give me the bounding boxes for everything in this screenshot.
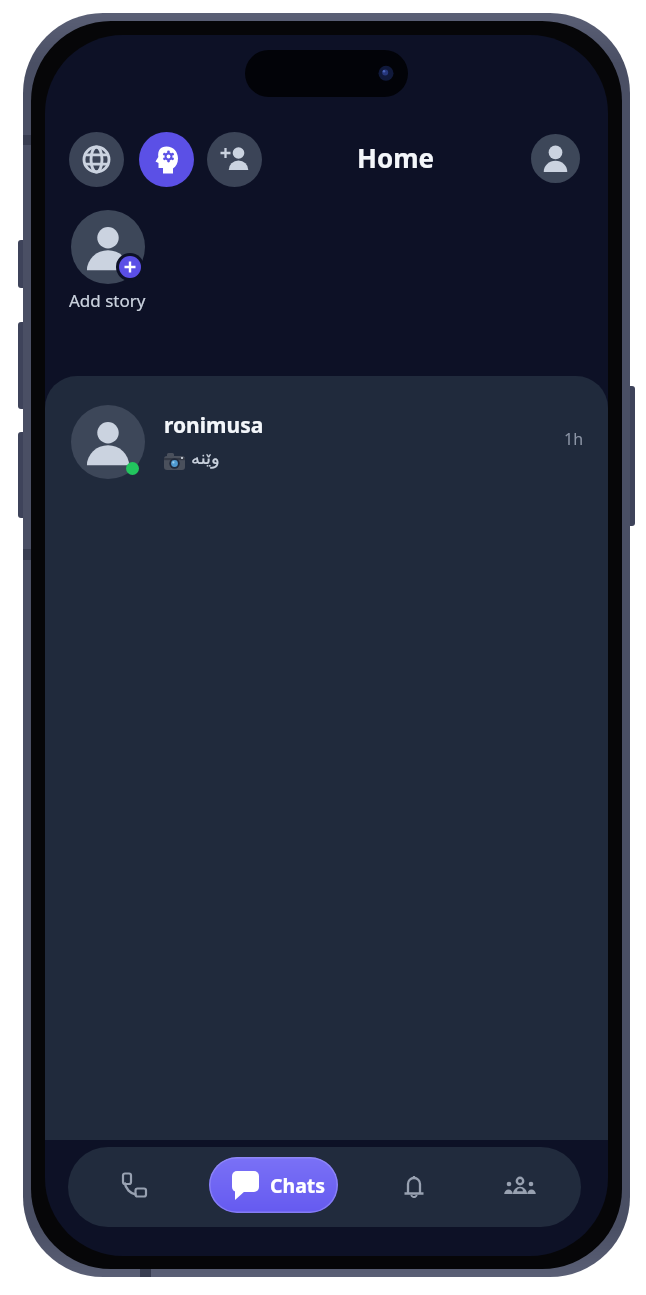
button[interactable] — [484, 1150, 556, 1224]
button[interactable]: ronimusa — [45, 376, 608, 482]
button[interactable] — [531, 134, 580, 183]
button[interactable] — [378, 1150, 450, 1224]
staticText: ronimusa — [164, 411, 264, 440]
staticText: 1h — [564, 428, 584, 450]
staticText: Add story — [69, 289, 146, 312]
button[interactable]: Chats — [209, 1157, 338, 1213]
staticText: وێنه — [191, 447, 220, 468]
button[interactable] — [98, 1150, 170, 1224]
staticText: Home — [357, 140, 435, 175]
button[interactable] — [69, 132, 124, 187]
button[interactable] — [207, 132, 262, 187]
staticText: Chats — [270, 1172, 326, 1199]
button[interactable] — [71, 210, 145, 284]
button[interactable] — [139, 132, 194, 187]
